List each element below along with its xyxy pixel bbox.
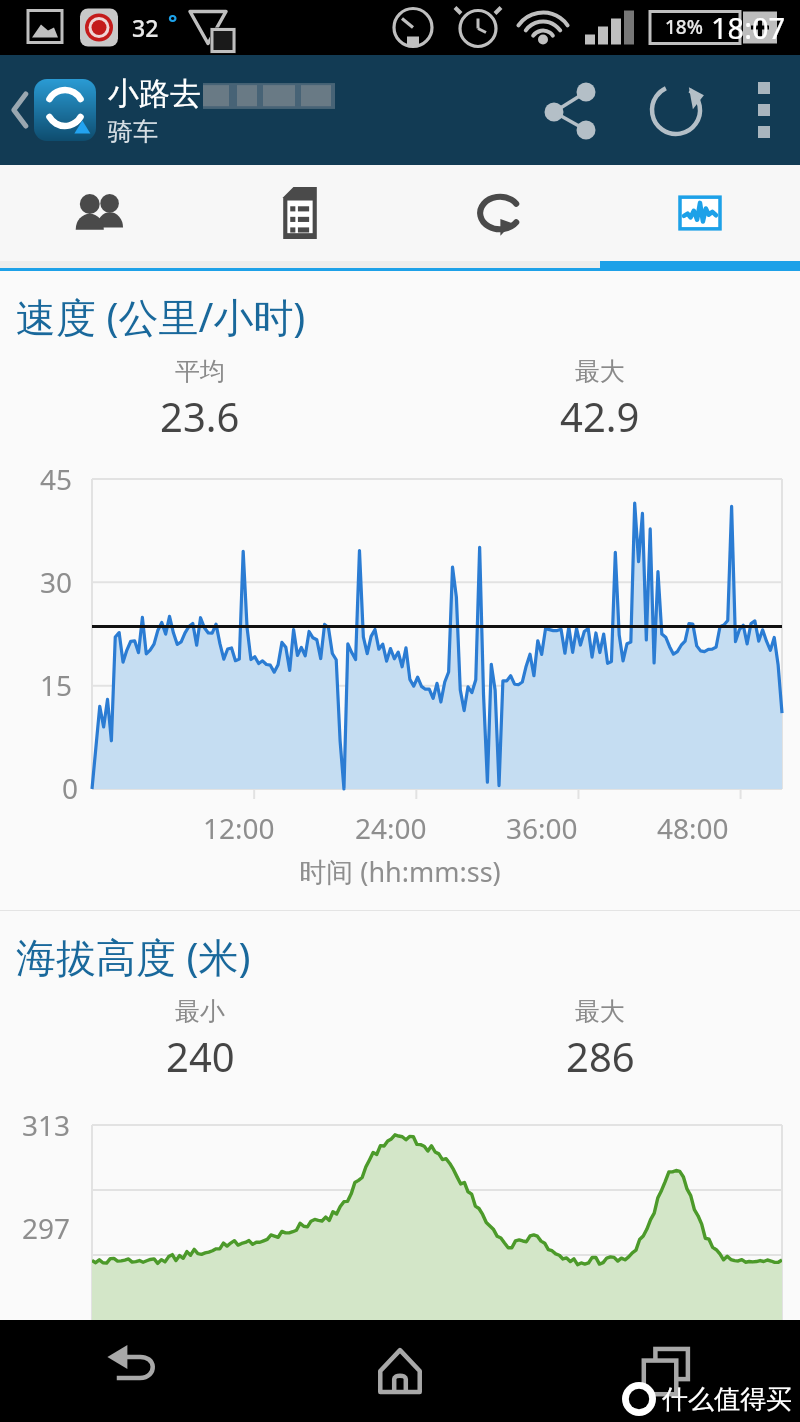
staticText: 小路去 bbox=[108, 74, 201, 113]
button[interactable]: Recent apps bbox=[533, 1320, 800, 1422]
button[interactable]: Details bbox=[200, 165, 400, 261]
staticText: 36:00 bbox=[506, 809, 578, 847]
staticText: 时间 (hh:mm:ss) bbox=[0, 853, 800, 890]
staticText: 23.6 bbox=[160, 389, 240, 443]
staticText: 32 bbox=[132, 12, 159, 43]
button[interactable]: Back bbox=[0, 55, 36, 165]
staticText: 0 bbox=[62, 769, 79, 807]
button[interactable]: Share bbox=[520, 55, 624, 165]
staticText: 240 bbox=[166, 1029, 235, 1083]
staticText: ° bbox=[168, 6, 178, 36]
staticText: 30 bbox=[40, 563, 73, 601]
staticText: 18:07 bbox=[711, 8, 786, 47]
staticText: 42.9 bbox=[560, 389, 640, 443]
button[interactable]: More options bbox=[728, 55, 800, 165]
button[interactable]: Back bbox=[0, 1320, 266, 1422]
staticText: 286 bbox=[566, 1029, 635, 1083]
staticText: 297 bbox=[22, 1209, 71, 1247]
staticText: 平均 bbox=[175, 356, 225, 387]
staticText: 281 bbox=[22, 1312, 71, 1350]
button[interactable]: App icon bbox=[34, 79, 96, 141]
button[interactable]: Refresh bbox=[624, 55, 728, 165]
staticText: 最大 bbox=[575, 356, 625, 387]
button[interactable]: People bbox=[0, 165, 200, 261]
staticText: 什么值得买 bbox=[662, 1383, 792, 1416]
staticText: 速度 (公里/小时) bbox=[16, 289, 306, 344]
button[interactable]: Home bbox=[266, 1320, 533, 1422]
button[interactable]: Charts bbox=[600, 165, 800, 261]
staticText: 12:00 bbox=[203, 809, 275, 847]
staticText: 24:00 bbox=[355, 809, 427, 847]
staticText: 18% bbox=[665, 14, 703, 40]
staticText: 骑车 bbox=[108, 116, 158, 147]
staticText: 最大 bbox=[575, 996, 625, 1027]
staticText: 313 bbox=[22, 1106, 71, 1144]
button[interactable]: Laps bbox=[400, 165, 600, 261]
staticText: 45 bbox=[40, 460, 73, 498]
staticText: 海拔高度 (米) bbox=[16, 929, 251, 984]
staticText: 15 bbox=[40, 666, 73, 704]
staticText: 最小 bbox=[175, 996, 225, 1027]
staticText: 48:00 bbox=[657, 809, 729, 847]
